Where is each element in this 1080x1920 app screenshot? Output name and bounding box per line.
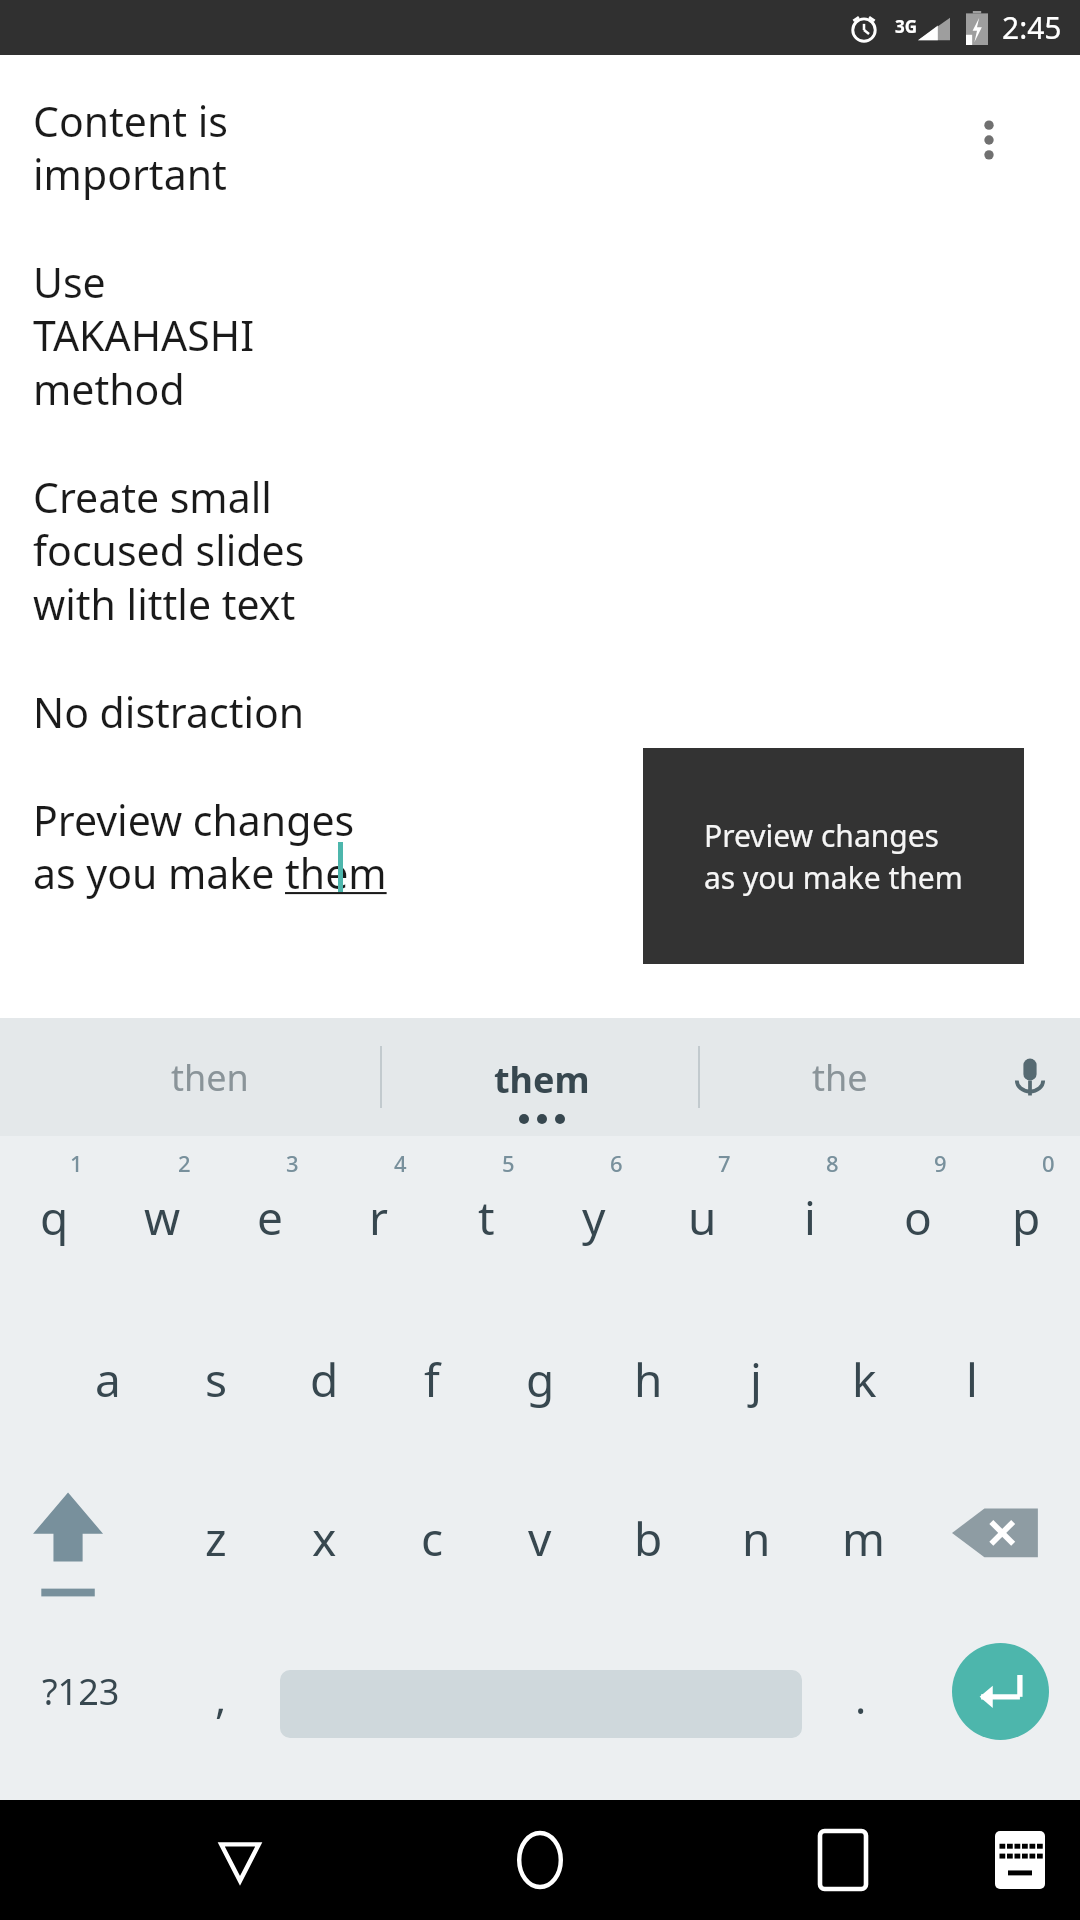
staticText: Content is important [33, 93, 228, 202]
staticText: Preview changes as you make them [33, 792, 387, 901]
staticText: k [852, 1348, 877, 1411]
staticText: i [804, 1186, 816, 1249]
staticText: j [750, 1348, 762, 1411]
button[interactable]: then [40, 1018, 380, 1136]
button[interactable]: Home [475, 1800, 605, 1920]
button[interactable]: j [702, 1298, 810, 1460]
button[interactable]: z [162, 1460, 270, 1622]
staticText: c [421, 1507, 444, 1570]
staticText: then [171, 1053, 249, 1102]
button[interactable]: h [594, 1298, 702, 1460]
button[interactable]: w [108, 1136, 216, 1298]
button[interactable]: g [486, 1298, 594, 1460]
button[interactable]: , [162, 1622, 280, 1784]
button[interactable]: u [648, 1136, 756, 1298]
staticText: s [205, 1348, 228, 1411]
staticText: t [478, 1186, 495, 1249]
button[interactable]: Backspace [918, 1460, 1080, 1622]
staticText: b [634, 1507, 663, 1570]
staticText: 5 [502, 1148, 515, 1178]
button[interactable]: them [382, 1018, 702, 1136]
button[interactable]: Voice input [980, 1018, 1080, 1136]
staticText: z [205, 1507, 227, 1570]
staticText: 4 [394, 1148, 407, 1178]
button[interactable]: Hide keyboard [175, 1800, 305, 1920]
button[interactable]: Recent apps [778, 1800, 908, 1920]
staticText: 8 [826, 1148, 839, 1178]
button[interactable]: v [486, 1460, 594, 1622]
staticText: the [812, 1053, 868, 1102]
button[interactable]: . [802, 1622, 920, 1784]
staticText: g [526, 1348, 555, 1411]
button[interactable]: c [378, 1460, 486, 1622]
staticText: w [144, 1186, 181, 1249]
staticText: 3 [286, 1148, 299, 1178]
staticText: v [528, 1507, 552, 1570]
button[interactable]: the [700, 1018, 980, 1136]
staticText: e [257, 1186, 283, 1249]
staticText: 6 [610, 1148, 623, 1178]
staticText: ?123 [42, 1667, 120, 1716]
staticText: y [582, 1186, 606, 1249]
button[interactable]: i [756, 1136, 864, 1298]
staticText: f [424, 1348, 440, 1411]
staticText: 1 [70, 1148, 83, 1178]
button[interactable]: y [540, 1136, 648, 1298]
button[interactable]: Enter [920, 1622, 1080, 1784]
staticText: a [95, 1348, 121, 1411]
button[interactable]: Change keyboard [965, 1800, 1075, 1920]
staticText: No distraction [33, 684, 305, 740]
staticText: Use TAKAHASHI method [33, 254, 255, 417]
button[interactable]: p [972, 1136, 1080, 1298]
staticText: h [634, 1348, 663, 1411]
button[interactable]: s [162, 1298, 270, 1460]
button[interactable]: ?123 [0, 1622, 162, 1784]
staticText: 2 [178, 1148, 191, 1178]
staticText: u [688, 1186, 717, 1249]
button[interactable]: b [594, 1460, 702, 1622]
staticText: r [369, 1186, 388, 1249]
button[interactable]: q [0, 1136, 108, 1298]
staticText: x [312, 1507, 337, 1570]
staticText: 0 [1042, 1148, 1055, 1178]
staticText: d [310, 1348, 339, 1411]
staticText: q [40, 1186, 69, 1249]
button[interactable]: Shift [0, 1460, 162, 1622]
button[interactable]: d [270, 1298, 378, 1460]
staticText: o [904, 1186, 932, 1249]
button[interactable]: t [432, 1136, 540, 1298]
button[interactable]: x [270, 1460, 378, 1622]
button[interactable]: r [324, 1136, 432, 1298]
staticText: , [215, 1669, 227, 1726]
staticText: n [742, 1507, 771, 1570]
button[interactable]: Preview changes as you make them [643, 748, 1024, 964]
button[interactable]: More options [944, 95, 1034, 185]
button[interactable]: l [918, 1298, 1026, 1460]
button[interactable]: e [216, 1136, 324, 1298]
staticText: 2:45 [1002, 7, 1062, 48]
button[interactable]: k [810, 1298, 918, 1460]
staticText: 3G [895, 15, 918, 38]
staticText: them [494, 1055, 590, 1104]
staticText: p [1012, 1186, 1041, 1249]
staticText: . [855, 1669, 867, 1726]
staticText: l [966, 1348, 978, 1411]
staticText: 7 [718, 1148, 731, 1178]
button[interactable]: f [378, 1298, 486, 1460]
staticText: m [842, 1507, 886, 1570]
button[interactable]: o [864, 1136, 972, 1298]
button[interactable]: n [702, 1460, 810, 1622]
staticText: Create small focused slides with little … [33, 469, 305, 632]
button[interactable]: a [54, 1298, 162, 1460]
staticText: 9 [934, 1148, 947, 1178]
button[interactable]: m [810, 1460, 918, 1622]
staticText: Preview changes as you make them [704, 815, 963, 898]
